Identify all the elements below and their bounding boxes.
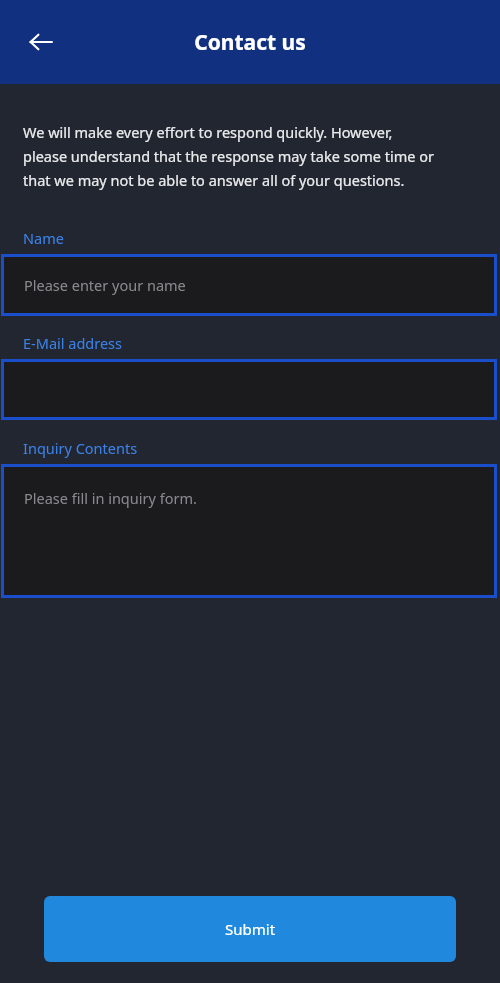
staticText: Inquiry Contents — [23, 438, 138, 458]
staticText: We will make every effort to respond qui… — [23, 122, 393, 142]
button[interactable] — [1, 359, 497, 420]
button[interactable]: Please enter your name — [1, 254, 497, 316]
staticText: Submit — [225, 919, 276, 939]
staticText: Please enter your name — [24, 275, 186, 295]
staticText: E-Mail address — [23, 333, 123, 353]
button[interactable]: Submit — [44, 896, 456, 962]
button[interactable]: Back — [17, 18, 65, 66]
staticText: please understand that the response may … — [23, 146, 435, 166]
button[interactable]: Please fill in inquiry form. — [1, 464, 497, 598]
staticText: Please fill in inquiry form. — [24, 488, 197, 508]
staticText: Contact us — [0, 28, 500, 57]
staticText: that we may not be able to answer all of… — [23, 170, 405, 190]
staticText: Name — [23, 228, 64, 248]
